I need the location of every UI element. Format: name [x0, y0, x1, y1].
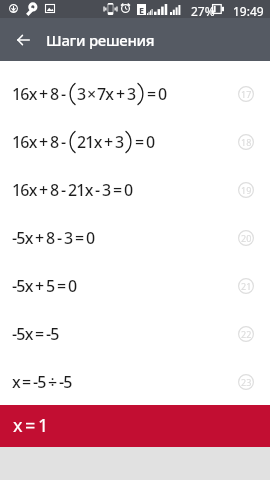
staticText: =	[22, 371, 31, 393]
staticText: 0	[124, 179, 133, 201]
staticText: -5	[46, 323, 59, 345]
staticText: Шаги решения	[46, 30, 155, 50]
staticText: =	[25, 413, 35, 438]
staticText: -	[57, 227, 62, 249]
staticText: 0	[146, 131, 155, 153]
staticText: 0	[68, 275, 77, 297]
staticText: E	[139, 4, 145, 15]
staticText: 23	[241, 376, 252, 388]
staticText: =	[35, 323, 44, 345]
staticText: -5x	[12, 227, 33, 249]
staticText: -	[61, 179, 66, 201]
staticText: 3	[102, 179, 111, 201]
staticText: ×	[87, 83, 96, 105]
staticText: 0	[86, 227, 95, 249]
staticText: x	[13, 413, 22, 438]
staticText: 7x	[97, 83, 114, 105]
staticText: +	[39, 131, 48, 153]
staticText: 16x	[12, 179, 37, 201]
staticText: 16x	[12, 131, 37, 153]
staticText: -	[95, 179, 100, 201]
staticText: =	[75, 227, 84, 249]
staticText: 3	[64, 227, 73, 249]
staticText: 27%	[191, 3, 215, 19]
button[interactable]: Back	[0, 18, 46, 61]
staticText: -	[61, 83, 66, 105]
staticText: -5	[33, 371, 46, 393]
button[interactable]: 16x	[0, 70, 270, 118]
staticText: -5x	[12, 275, 33, 297]
button[interactable]: -5x	[0, 310, 270, 358]
staticText: -	[61, 131, 66, 153]
staticText: +	[104, 131, 113, 153]
staticText: =	[147, 83, 156, 105]
staticText: 21	[241, 280, 252, 292]
button[interactable]: x	[0, 358, 270, 406]
staticText: 20	[241, 232, 252, 244]
staticText: 3	[77, 83, 86, 105]
staticText: +	[39, 83, 48, 105]
staticText: -5x	[12, 323, 33, 345]
staticText: x	[12, 371, 20, 393]
button[interactable]: x	[0, 405, 270, 447]
staticText: =	[135, 131, 144, 153]
staticText: 1	[38, 413, 48, 438]
staticText: ÷	[48, 371, 57, 393]
staticText: 8	[50, 83, 59, 105]
staticText: 8	[46, 227, 55, 249]
staticText: 0	[158, 83, 167, 105]
staticText: +	[35, 275, 44, 297]
staticText: +	[39, 179, 48, 201]
staticText: 8	[50, 179, 59, 201]
button[interactable]: 16x	[0, 166, 270, 214]
staticText: 3	[115, 131, 124, 153]
staticText: =	[113, 179, 122, 201]
staticText: 19	[241, 184, 252, 196]
staticText: +	[116, 83, 125, 105]
staticText: 3	[127, 83, 136, 105]
button[interactable]: -5x	[0, 214, 270, 262]
button[interactable]: 16x	[0, 118, 270, 166]
staticText: +	[35, 227, 44, 249]
staticText: =	[57, 275, 66, 297]
staticText: 17	[241, 88, 252, 100]
staticText: 5	[46, 275, 55, 297]
button[interactable]: -5x	[0, 262, 270, 310]
staticText: 21x	[68, 179, 93, 201]
staticText: 8	[50, 131, 59, 153]
staticText: 22	[241, 328, 252, 340]
staticText: 16x	[12, 83, 37, 105]
staticText: 21x	[77, 131, 102, 153]
staticText: 19:49	[233, 3, 264, 19]
staticText: -5	[59, 371, 72, 393]
staticText: 18	[241, 136, 252, 148]
